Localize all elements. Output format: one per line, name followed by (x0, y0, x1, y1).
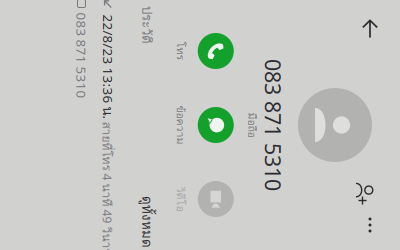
button[interactable]: 22/8/23 13:36 น. (75, 207, 325, 250)
staticText: มือถือ (187, 65, 212, 81)
button[interactable]: โทร (89, 91, 163, 153)
staticText: ดูทั้งหมด (271, 168, 323, 188)
staticText: สายที่โทร 4 นาที 49 วินาที (196, 209, 331, 228)
staticText: ข้อความ (180, 136, 219, 153)
button[interactable]: ดูทั้งหมด (271, 168, 323, 188)
staticText: วิดีโอ (261, 136, 286, 153)
staticText: ประวัติ (81, 168, 119, 188)
button[interactable]: วิดีโอ (237, 91, 311, 153)
staticText: 083 871 5310 (87, 235, 173, 250)
staticText: 083 871 5310 (134, 38, 266, 66)
button[interactable]: ข้อความ (163, 91, 237, 153)
staticText: 22/8/23 13:36 น. (89, 207, 194, 228)
